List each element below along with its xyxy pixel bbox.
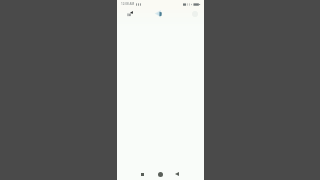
staticText: 12:08 AM — [121, 2, 135, 6]
button[interactable]: Account — [189, 8, 200, 19]
button[interactable]: Navigate up — [124, 8, 135, 19]
button[interactable]: Back — [171, 168, 183, 180]
button[interactable]: Home — [154, 168, 166, 180]
button[interactable]: Send — [154, 8, 165, 19]
button[interactable]: Recent apps — [136, 168, 148, 180]
